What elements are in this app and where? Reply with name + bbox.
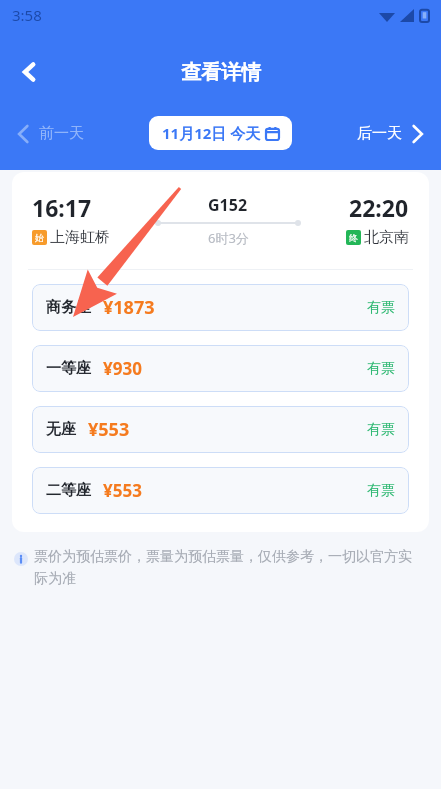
staticText: 有票 [367, 360, 395, 378]
button[interactable]: 二等座 [32, 467, 409, 514]
staticText: 商务座 [46, 298, 91, 317]
staticText: ¥930 [103, 357, 142, 380]
button[interactable]: Back [8, 50, 52, 94]
staticText: 票价为预估票价，票量为预估票量，仅供参考，一切以官方实际为准 [34, 548, 423, 588]
staticText: 始 [35, 232, 44, 243]
staticText: 后一天 [357, 124, 402, 143]
staticText: ¥553 [103, 479, 142, 502]
staticText: 3:58 [12, 5, 42, 25]
staticText: 北京南 [364, 228, 409, 247]
staticText: 11月12日 今天 [162, 123, 261, 143]
button[interactable]: 无座 [32, 406, 409, 453]
staticText: G152 [208, 194, 248, 216]
staticText: 6时3分 [208, 229, 249, 247]
staticText: 有票 [367, 482, 395, 500]
staticText: 前一天 [39, 124, 84, 143]
staticText: 查看详情 [181, 60, 261, 85]
button[interactable]: 前一天 [12, 118, 90, 149]
staticText: 二等座 [46, 481, 91, 500]
button[interactable]: 后一天 [351, 118, 429, 149]
button[interactable]: 一等座 [32, 345, 409, 392]
staticText: 终 [349, 232, 358, 243]
staticText: 无座 [46, 420, 76, 439]
staticText: 有票 [367, 421, 395, 439]
staticText: 上海虹桥 [50, 228, 110, 247]
button[interactable]: 商务座 [32, 284, 409, 331]
staticText: ¥553 [88, 417, 130, 442]
staticText: 有票 [367, 299, 395, 317]
staticText: 22:20 [349, 192, 409, 223]
staticText: 16:17 [32, 192, 92, 223]
button[interactable]: 11月12日 今天 [149, 116, 292, 150]
staticText: ¥1873 [103, 295, 155, 320]
staticText: 一等座 [46, 359, 91, 378]
